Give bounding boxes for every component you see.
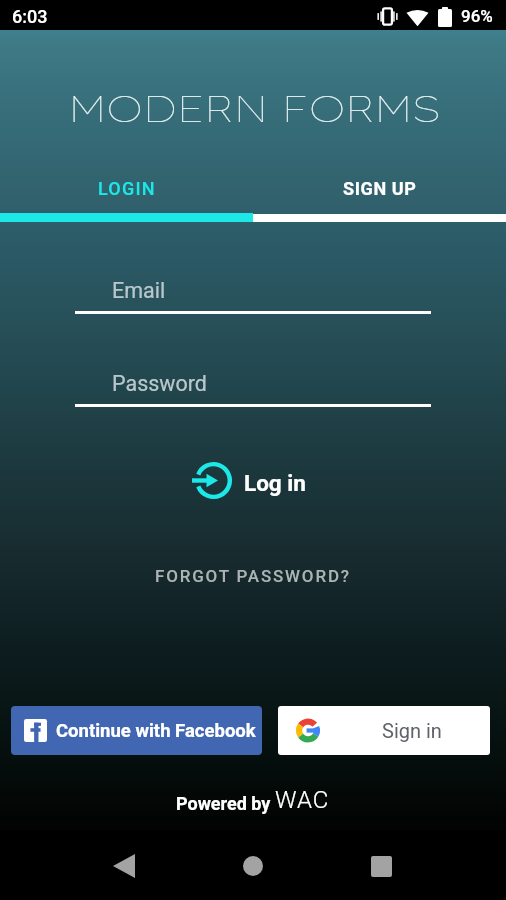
button[interactable]: LOGIN bbox=[0, 170, 253, 206]
button[interactable]: Home bbox=[225, 838, 281, 894]
staticText: Password bbox=[112, 371, 207, 396]
staticText: 6:03 bbox=[12, 6, 48, 27]
staticText: Email bbox=[112, 278, 166, 303]
staticText: MODERN FORMS bbox=[0, 84, 506, 132]
button[interactable]: Sign in bbox=[278, 706, 490, 755]
staticText: SIGN UP bbox=[343, 178, 417, 199]
staticText: Log in bbox=[244, 470, 306, 496]
button[interactable]: Log in bbox=[192, 461, 306, 501]
button[interactable]: FORGOT PASSWORD? bbox=[155, 566, 351, 586]
button[interactable]: SIGN UP bbox=[253, 170, 506, 206]
staticText: WAC bbox=[275, 786, 330, 814]
button[interactable]: Recents bbox=[353, 838, 409, 894]
staticText: FORGOT PASSWORD? bbox=[155, 566, 351, 586]
button[interactable]: Back bbox=[96, 838, 152, 894]
staticText: Sign in bbox=[382, 719, 442, 742]
button[interactable]: Continue with Facebook bbox=[11, 706, 262, 755]
staticText: Continue with Facebook bbox=[56, 720, 256, 742]
staticText: LOGIN bbox=[98, 178, 156, 199]
staticText: 96% bbox=[461, 6, 493, 26]
staticText: Powered by bbox=[176, 793, 275, 814]
